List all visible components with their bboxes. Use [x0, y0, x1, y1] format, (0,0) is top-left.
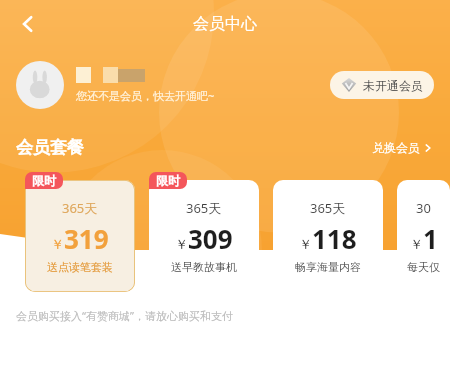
staticText: ￥	[51, 236, 64, 252]
staticText: 会员套餐	[16, 137, 84, 158]
staticText: ￥	[175, 236, 188, 252]
staticText: 您还不是会员，快去开通吧~	[76, 88, 215, 103]
staticText: 会员购买接入“有赞商城”，请放心购买和支付	[16, 308, 233, 323]
button[interactable]: 365天	[25, 180, 135, 292]
staticText: 送早教故事机	[171, 260, 237, 274]
staticText: 365天	[62, 199, 98, 217]
button[interactable]: Back	[8, 4, 48, 44]
staticText: 畅享海量内容	[295, 260, 361, 274]
staticText: 118	[312, 221, 357, 256]
button[interactable]: 兑换会员	[368, 136, 436, 159]
staticText: 365天	[310, 199, 346, 217]
button[interactable]: Avatar	[16, 61, 64, 109]
button[interactable]: 365天	[273, 180, 383, 292]
staticText: 未开通会员	[363, 78, 423, 93]
button[interactable]: 未开通会员	[330, 71, 434, 99]
staticText: 限时	[32, 173, 56, 188]
staticText: 限时	[156, 173, 180, 188]
staticText: 1	[423, 221, 438, 256]
staticText: 送点读笔套装	[47, 260, 113, 274]
staticText: 309	[188, 221, 233, 256]
staticText: 兑换会员	[372, 140, 420, 155]
staticText: 会员中心	[193, 14, 257, 34]
staticText: 每天仅	[407, 260, 440, 274]
staticText: ￥	[410, 236, 423, 252]
button[interactable]: 365天	[149, 180, 259, 292]
button[interactable]: 30	[397, 180, 450, 292]
staticText: 30	[416, 199, 431, 217]
staticText: ￥	[299, 236, 312, 252]
staticText: 365天	[186, 199, 222, 217]
staticText: 319	[64, 221, 109, 256]
